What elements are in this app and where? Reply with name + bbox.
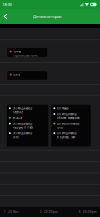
staticText: Точка [13,50,20,53]
staticText: 2 [40,210,42,214]
staticText: 1 [4,210,6,214]
staticText: 3 [79,210,81,214]
staticText: ОПЕТ [57,126,63,129]
staticText: объект. материал [57,116,80,120]
button[interactable]: ОП Факел [51,105,91,146]
staticText: в Бункер. Такт [57,135,75,139]
staticText: ОП Исполнение [57,122,79,125]
staticText: несение [12,110,22,114]
staticText: ОП Индикатор [12,131,32,135]
staticText: Детали истории [33,14,61,19]
staticText: ОПЕТ [12,135,18,139]
staticText: ОП Факел [57,107,69,110]
button[interactable]: Е.И.Б [7,71,47,80]
staticText: ОП Индикатор [12,107,32,110]
staticText: ОП Индикатор [57,112,77,116]
staticText: 20 Nov [8,210,18,214]
staticText: Ел.АСв [12,116,22,120]
staticText: 18:30 [2,2,11,7]
staticText: 20:00pm [83,210,96,214]
button[interactable]: Точка [7,48,47,57]
staticText: Е.И.Б [13,73,20,76]
staticText: Перенаправление [13,54,37,57]
staticText: ОП Индикатор [57,131,77,135]
button[interactable]: Back [0,9,13,24]
staticText: 20:00pm [44,210,57,214]
button[interactable]: ОП Индикатор [7,105,48,146]
staticText: ОП Индикатор [12,122,32,125]
staticText: нагрузка in Pack [12,126,32,129]
